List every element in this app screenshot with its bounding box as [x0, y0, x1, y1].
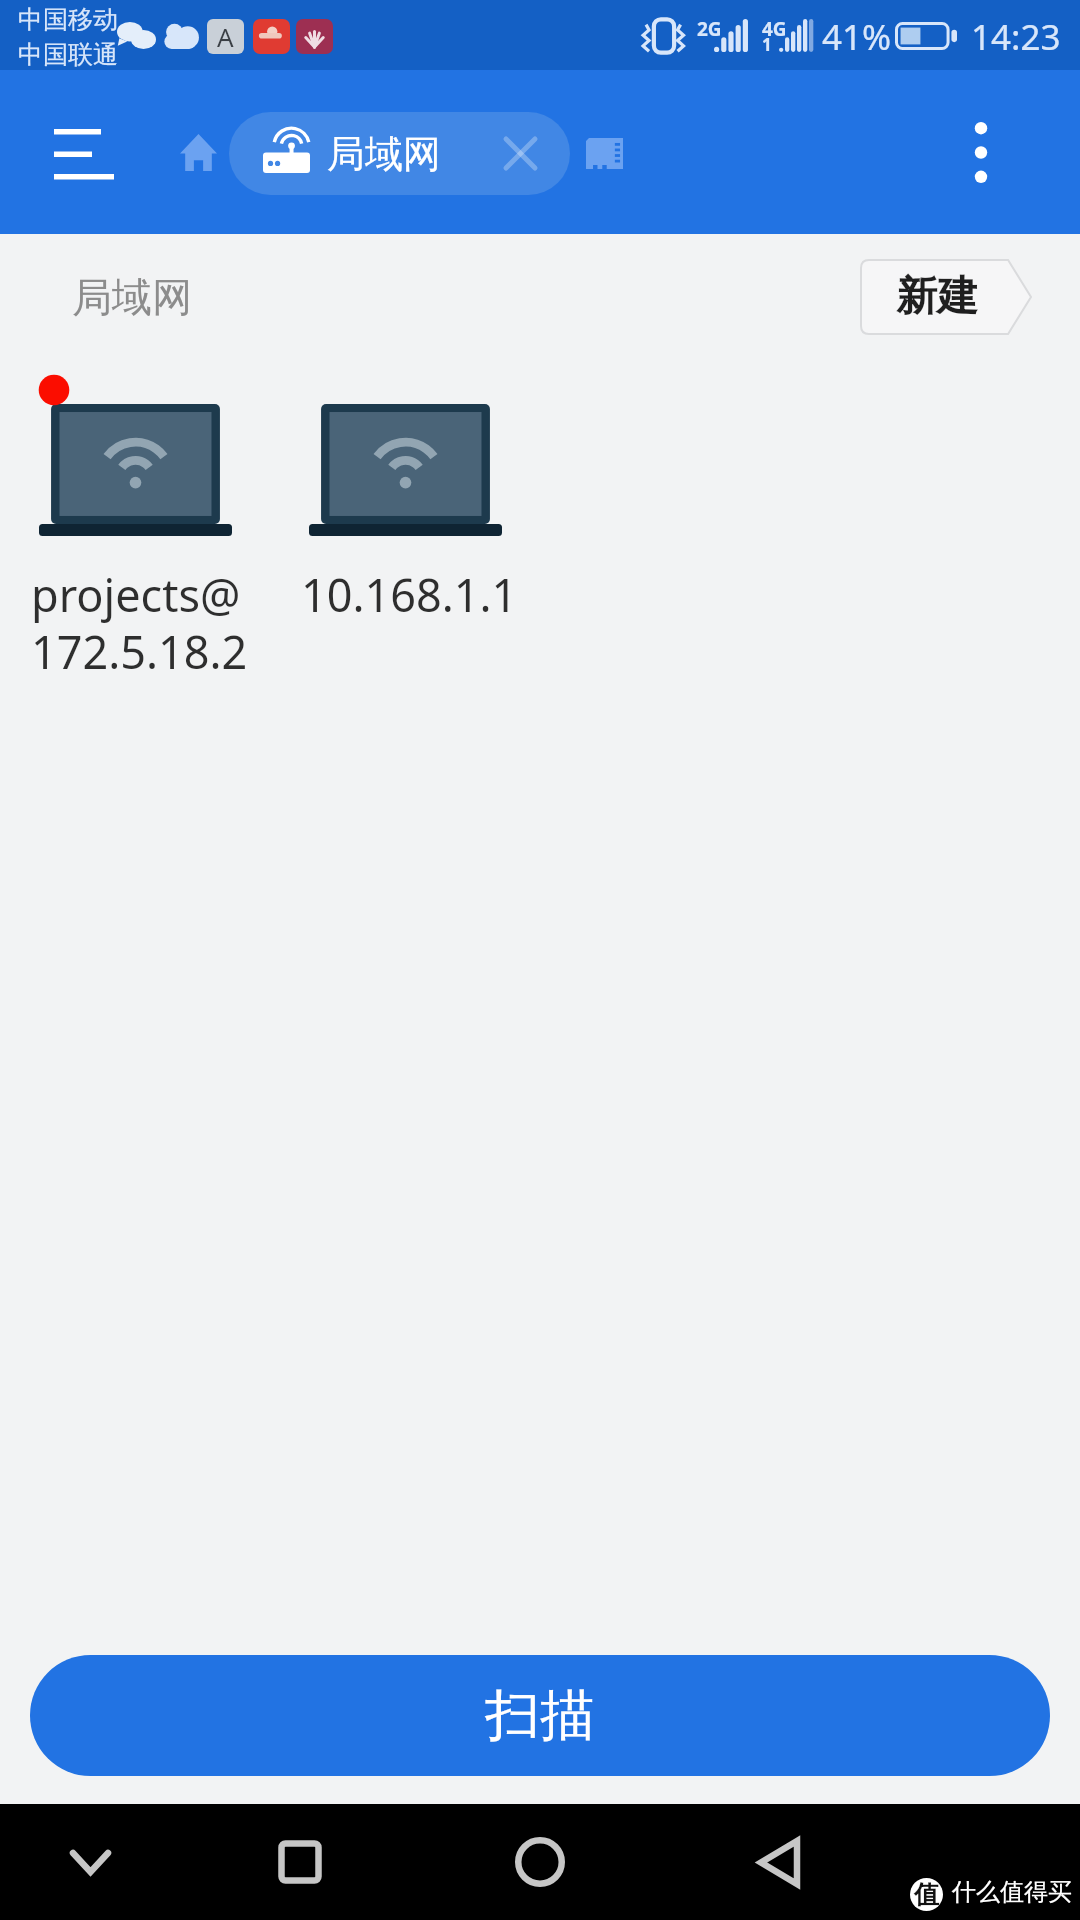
- staticText: 2G: [697, 16, 722, 42]
- staticText: 中国联通: [18, 39, 118, 70]
- button[interactable]: Home: [158, 102, 238, 202]
- button[interactable]: Storage: [570, 98, 638, 208]
- staticText: 41%: [822, 13, 892, 61]
- button[interactable]: 10.168.1.1: [288, 374, 550, 684]
- button[interactable]: 局域网: [229, 112, 570, 195]
- staticText: 4G: [762, 16, 787, 42]
- button[interactable]: Home: [498, 1823, 582, 1901]
- button[interactable]: 扫描: [30, 1655, 1050, 1776]
- staticText: 局域网: [327, 130, 441, 178]
- staticText: 扫描: [485, 1681, 595, 1750]
- staticText: 新建: [896, 271, 978, 323]
- staticText: 14:23: [971, 13, 1061, 61]
- staticText: A: [217, 19, 234, 54]
- button[interactable]: Clear search: [491, 124, 550, 183]
- button[interactable]: Recents: [258, 1823, 342, 1901]
- staticText: 什么值得买: [952, 1877, 1072, 1907]
- staticText: 值: [914, 1879, 939, 1910]
- button[interactable]: Menu: [22, 97, 146, 207]
- staticText: projects@ 172.5.18.2: [31, 564, 248, 682]
- staticText: 1: [762, 33, 772, 56]
- button[interactable]: projects@ 172.5.18.2: [18, 374, 280, 684]
- staticText: 中国移动: [18, 4, 118, 35]
- button[interactable]: Hide keyboard: [48, 1823, 132, 1901]
- button[interactable]: Back: [737, 1823, 821, 1901]
- staticText: 10.168.1.1: [301, 564, 518, 625]
- button[interactable]: More options: [936, 97, 1026, 207]
- button[interactable]: 新建: [861, 260, 1033, 334]
- staticText: 局域网: [72, 272, 192, 322]
